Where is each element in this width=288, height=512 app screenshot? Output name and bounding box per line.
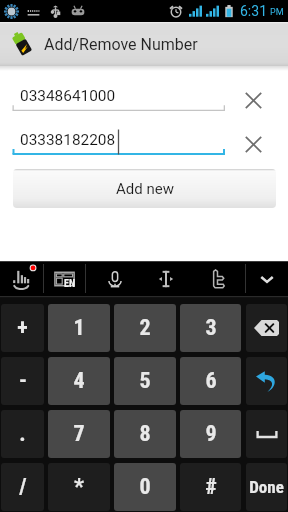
button[interactable]: Add new: [13, 169, 276, 208]
button[interactable]: 6: [180, 357, 241, 405]
staticText: 1: [73, 315, 85, 341]
button[interactable]: 1: [48, 304, 110, 352]
staticText: 5: [139, 368, 151, 394]
staticText: 6:31: [240, 3, 267, 19]
staticText: 03348641000: [20, 87, 116, 105]
button[interactable]: 3: [180, 304, 241, 352]
staticText: +: [17, 315, 28, 341]
button[interactable]: Gesture typing: [0, 261, 43, 296]
button[interactable]: 7: [48, 410, 110, 458]
staticText: 6: [205, 368, 217, 394]
button[interactable]: -: [1, 357, 44, 405]
button[interactable]: Clear text: [245, 92, 262, 109]
staticText: EN: [64, 278, 76, 290]
button[interactable]: /: [1, 463, 44, 511]
button[interactable]: Clear text: [245, 136, 262, 153]
staticText: PM: [270, 7, 284, 18]
button[interactable]: 9: [180, 410, 241, 458]
staticText: 9: [205, 421, 217, 447]
button[interactable]: 03348641000: [0, 86, 225, 111]
staticText: 7: [73, 421, 85, 447]
staticText: 0: [139, 474, 151, 500]
button[interactable]: Space: [246, 410, 287, 458]
button[interactable]: 03338182208: [0, 130, 225, 155]
staticText: 8: [139, 421, 151, 447]
staticText: 3: [205, 315, 217, 341]
staticText: #: [205, 474, 217, 500]
button[interactable]: 8: [114, 410, 176, 458]
button[interactable]: Voice input: [86, 261, 143, 296]
button[interactable]: Move cursor: [143, 261, 188, 296]
button[interactable]: +: [1, 304, 44, 352]
staticText: Add new: [116, 180, 174, 198]
button[interactable]: .: [1, 410, 44, 458]
button[interactable]: Done: [246, 463, 287, 511]
staticText: 2: [139, 315, 151, 341]
button[interactable]: 5: [114, 357, 176, 405]
staticText: *: [74, 474, 84, 500]
button[interactable]: Hide keyboard: [246, 261, 288, 296]
button[interactable]: Enter: [246, 357, 287, 405]
button[interactable]: 4: [48, 357, 110, 405]
button[interactable]: 0: [114, 463, 176, 511]
button[interactable]: Input language: [44, 261, 86, 296]
staticText: -: [19, 368, 27, 394]
staticText: Done: [249, 477, 284, 497]
button[interactable]: *: [48, 463, 110, 511]
staticText: .: [19, 421, 26, 447]
staticText: 4: [73, 368, 85, 394]
button[interactable]: Clipboard: [188, 261, 245, 296]
staticText: 03338182208: [20, 131, 116, 149]
button[interactable]: 2: [114, 304, 176, 352]
button[interactable]: #: [180, 463, 241, 511]
staticText: Add/Remove Number: [44, 35, 198, 54]
staticText: /: [19, 474, 27, 500]
button[interactable]: Backspace: [246, 304, 287, 352]
